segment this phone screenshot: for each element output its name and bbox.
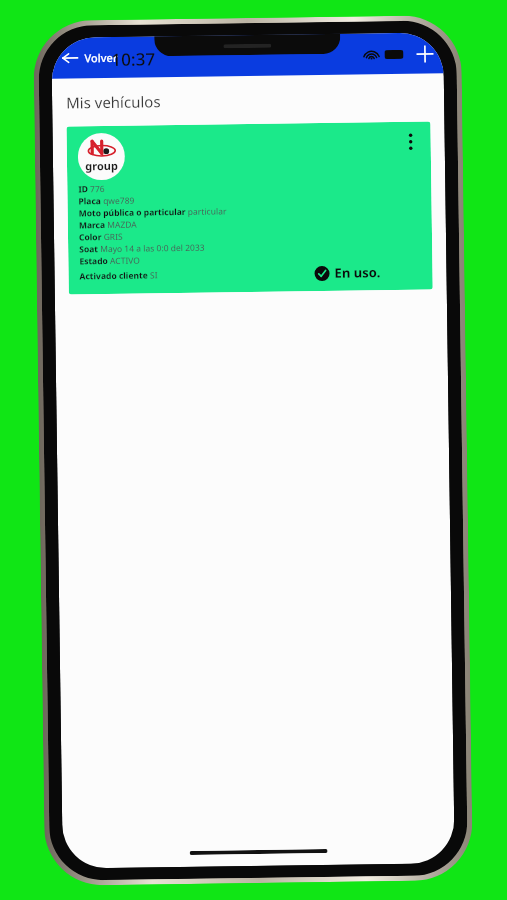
staticText: Mis vehículos xyxy=(66,91,161,112)
staticText: Marca MAZDA xyxy=(79,219,137,231)
staticText: Activado cliente SI xyxy=(79,269,158,282)
staticText: Placa qwe789 xyxy=(78,195,135,207)
staticText: En uso. xyxy=(334,263,381,282)
button[interactable]: group xyxy=(66,121,433,295)
staticText: Color GRIS xyxy=(79,231,123,243)
button[interactable]: More options xyxy=(400,129,421,155)
staticText: Estado ACTIVO xyxy=(79,255,140,267)
staticText: Volver xyxy=(84,50,118,65)
staticText: group xyxy=(85,158,118,173)
button[interactable]: Back xyxy=(57,45,122,71)
other: Back xyxy=(61,49,79,67)
staticText: ID 776 xyxy=(78,183,105,195)
staticText: 10:37 xyxy=(111,47,156,71)
button[interactable]: Add xyxy=(413,42,436,65)
staticText: Soat Mayo 14 a las 0:0 del 2033 xyxy=(79,242,205,255)
staticText: Moto pública o particular particular xyxy=(79,205,227,219)
